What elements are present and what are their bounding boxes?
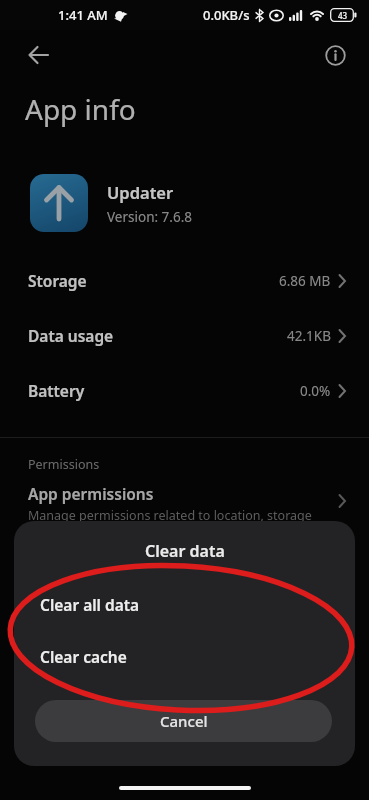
button[interactable]: Data usage xyxy=(0,308,369,363)
staticText: 42.1KB xyxy=(287,327,331,345)
button[interactable]: Storage xyxy=(0,253,369,308)
staticText: App info xyxy=(25,90,136,128)
button[interactable] xyxy=(317,37,353,73)
staticText: Clear all data xyxy=(40,594,140,615)
staticText: Battery xyxy=(28,380,85,401)
button[interactable]: Clear all data xyxy=(14,583,355,625)
button[interactable]: App permissions xyxy=(0,476,369,536)
staticText: 0.0% xyxy=(300,382,331,400)
button[interactable]: Battery xyxy=(0,363,369,418)
staticText: 1:41 AM xyxy=(58,6,108,24)
staticText: Cancel xyxy=(160,711,208,731)
staticText: Storage xyxy=(28,270,87,291)
staticText: Data usage xyxy=(28,325,114,346)
staticText: 0.0KB/s xyxy=(203,6,250,24)
staticText: Manage permissions related to location, … xyxy=(28,507,312,524)
staticText: 43 xyxy=(338,10,348,21)
staticText: Clear data xyxy=(145,540,225,562)
staticText: 6.86 MB xyxy=(279,272,331,290)
button[interactable]: Cancel xyxy=(35,700,332,742)
staticText: Updater xyxy=(107,181,174,203)
staticText: App permissions xyxy=(28,483,154,504)
staticText: Clear cache xyxy=(40,646,127,667)
staticText: Version: 7.6.8 xyxy=(107,208,193,226)
staticText: Permissions xyxy=(28,456,100,473)
button[interactable] xyxy=(20,37,56,73)
button[interactable]: Clear cache xyxy=(14,635,355,677)
